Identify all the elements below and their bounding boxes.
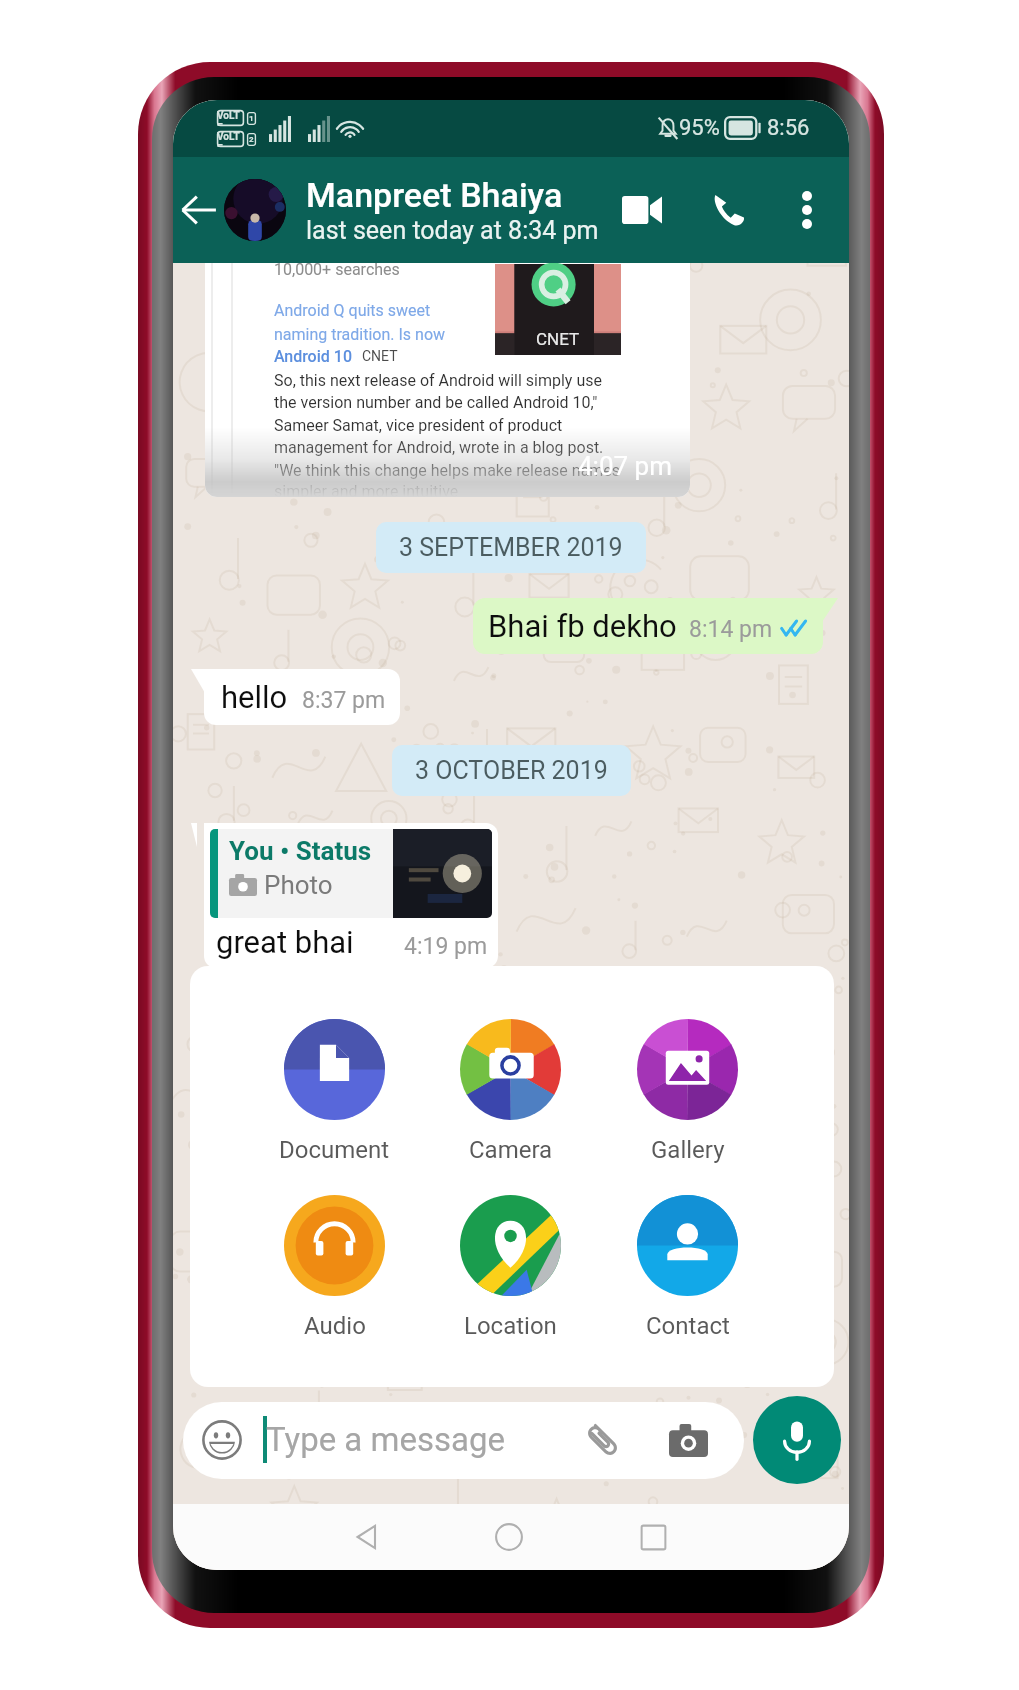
- button[interactable]: hello: [204, 669, 400, 725]
- staticText: 2: [249, 135, 254, 144]
- staticText: Android Q quits sweet: [274, 301, 431, 320]
- staticText: 8:14 pm: [689, 616, 773, 643]
- button[interactable]: Video call: [614, 157, 670, 263]
- button[interactable]: Call: [701, 157, 757, 263]
- staticText: 4:19 pm: [404, 933, 488, 960]
- button[interactable]: Manpreet Bhaiya: [306, 157, 599, 263]
- staticText: 3 OCTOBER 2019: [415, 756, 608, 785]
- staticText: Bhai fb dekho: [488, 608, 677, 644]
- staticText: So, this next release of Android will si…: [274, 371, 602, 390]
- staticText: 95%: [679, 115, 720, 141]
- staticText: Photo: [264, 870, 333, 900]
- staticText: VoLTE: [217, 131, 244, 147]
- button[interactable]: Camera: [658, 1410, 718, 1470]
- staticText: 8:37 pm: [302, 687, 386, 714]
- staticText: naming tradition. Is now: [274, 325, 446, 344]
- button[interactable]: Audio: [259, 1195, 409, 1355]
- staticText: Sameer Samat, vice president of product: [274, 416, 563, 435]
- button[interactable]: Contact: [612, 1195, 762, 1355]
- staticText: Gallery: [651, 1136, 725, 1164]
- staticText: Audio: [304, 1312, 366, 1340]
- button[interactable]: Attach: [572, 1410, 632, 1470]
- staticText: 10,000+ searches: [274, 260, 400, 279]
- staticText: last seen today at 8:34 pm: [306, 216, 599, 245]
- button[interactable]: Home: [479, 1504, 539, 1570]
- staticText: Android 10: [274, 347, 352, 366]
- button[interactable]: Profile photo: [224, 179, 286, 241]
- staticText: 8:56: [767, 115, 810, 141]
- button[interactable]: Back: [173, 157, 225, 263]
- staticText: Location: [464, 1312, 557, 1340]
- button[interactable]: 10,000+ searches: [205, 250, 690, 497]
- staticText: 4:07 pm: [578, 451, 672, 481]
- staticText: Camera: [469, 1136, 553, 1164]
- staticText: the version number and be called Android…: [274, 393, 598, 412]
- button[interactable]: Back: [336, 1504, 396, 1570]
- staticText: You • Status: [229, 836, 372, 866]
- staticText: management for Android, wrote in a blog …: [274, 438, 604, 457]
- staticText: Contact: [646, 1312, 730, 1340]
- staticText: Manpreet Bhaiya: [306, 175, 563, 215]
- button[interactable]: Document: [259, 1019, 409, 1179]
- button[interactable]: More options: [782, 157, 831, 263]
- button[interactable]: Recent apps: [623, 1504, 683, 1570]
- staticText: great bhai: [216, 924, 354, 960]
- staticText: VoLTE: [217, 110, 244, 126]
- staticText: CNET: [536, 329, 580, 349]
- staticText: simpler and more intuitive: [274, 482, 459, 497]
- staticText: CNET: [362, 348, 398, 364]
- staticText: Document: [279, 1136, 390, 1164]
- staticText: hello: [221, 679, 288, 715]
- button[interactable]: Location: [435, 1195, 585, 1355]
- button[interactable]: Type a message: [183, 1402, 744, 1479]
- staticText: "We think this change helps make release…: [274, 461, 621, 480]
- staticText: Type a message: [266, 1420, 505, 1459]
- button[interactable]: Bhai fb dekho: [473, 598, 823, 654]
- staticText: 1: [249, 114, 254, 123]
- button[interactable]: Record voice message: [753, 1396, 841, 1484]
- staticText: 3 SEPTEMBER 2019: [399, 533, 623, 562]
- button[interactable]: Gallery: [612, 1019, 762, 1179]
- button[interactable]: Camera: [435, 1019, 585, 1179]
- button[interactable]: You • Status: [204, 823, 498, 968]
